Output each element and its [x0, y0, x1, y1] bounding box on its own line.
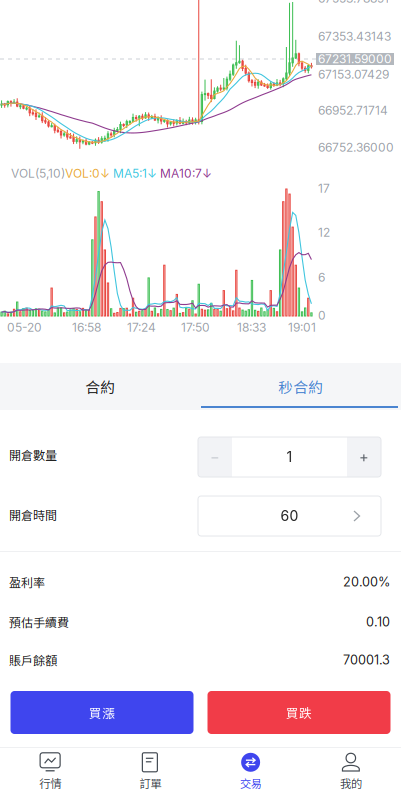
button[interactable]: 訂單 — [100, 748, 200, 796]
staticText: 1 — [286, 448, 292, 465]
staticText: 盈利率 — [9, 573, 45, 591]
staticText: MA5:1↓ — [110, 166, 157, 180]
staticText: 行情 — [39, 775, 61, 791]
staticText: 秒合約 — [278, 376, 323, 397]
button[interactable]: − — [198, 437, 232, 477]
staticText: 66952.71714 — [318, 103, 388, 117]
button[interactable]: + — [347, 437, 381, 477]
button[interactable]: 秒合約 — [200, 363, 401, 410]
button[interactable]: 買漲 — [10, 691, 193, 734]
button[interactable]: 我的 — [301, 748, 401, 796]
staticText: 預估手續費 — [9, 613, 69, 631]
staticText: 16:58 — [72, 320, 101, 334]
button[interactable]: 合約 — [0, 363, 200, 410]
staticText: 買漲 — [89, 703, 115, 722]
staticText: 17:50 — [181, 320, 210, 334]
staticText: MA10:7↓ — [157, 166, 212, 180]
staticText: − — [210, 448, 220, 466]
staticText: 6 — [318, 270, 325, 284]
staticText: 0.10 — [366, 614, 390, 630]
staticText: 19:01 — [288, 320, 316, 334]
staticText: 開倉數量 — [9, 446, 57, 463]
staticText: 12 — [318, 225, 330, 239]
staticText: VOL(5,10) — [11, 166, 65, 180]
staticText: 67231.59000 — [318, 52, 392, 66]
staticText: 我的 — [340, 775, 362, 791]
staticText: + — [359, 448, 369, 466]
staticText: 合約 — [85, 376, 115, 397]
staticText: 開倉時間 — [9, 506, 57, 523]
staticText: 20.00% — [343, 574, 390, 590]
button[interactable]: 買跌 — [207, 691, 390, 734]
staticText: 67153.07429 — [318, 67, 389, 81]
staticText: 70001.3 — [343, 652, 390, 668]
staticText: 17:24 — [127, 320, 156, 334]
staticText: 66752.36000 — [318, 140, 394, 154]
staticText: 17 — [318, 181, 330, 195]
staticText: 買跌 — [286, 703, 312, 722]
staticText: 18:33 — [237, 320, 266, 334]
staticText: 05-20 — [7, 320, 42, 334]
button[interactable]: 60 — [198, 496, 381, 536]
staticText: 交易 — [240, 775, 262, 791]
staticText: 訂單 — [139, 775, 161, 791]
button[interactable]: 行情 — [0, 748, 100, 796]
button[interactable]: 交易 — [200, 748, 301, 796]
staticText: 賬戶餘額 — [9, 651, 57, 669]
staticText: 67553.78891 — [318, 0, 389, 5]
staticText: 67353.43143 — [318, 29, 391, 43]
staticText: 0 — [318, 308, 326, 322]
staticText: 60 — [280, 507, 298, 524]
staticText: VOL:0↓ — [65, 166, 110, 180]
